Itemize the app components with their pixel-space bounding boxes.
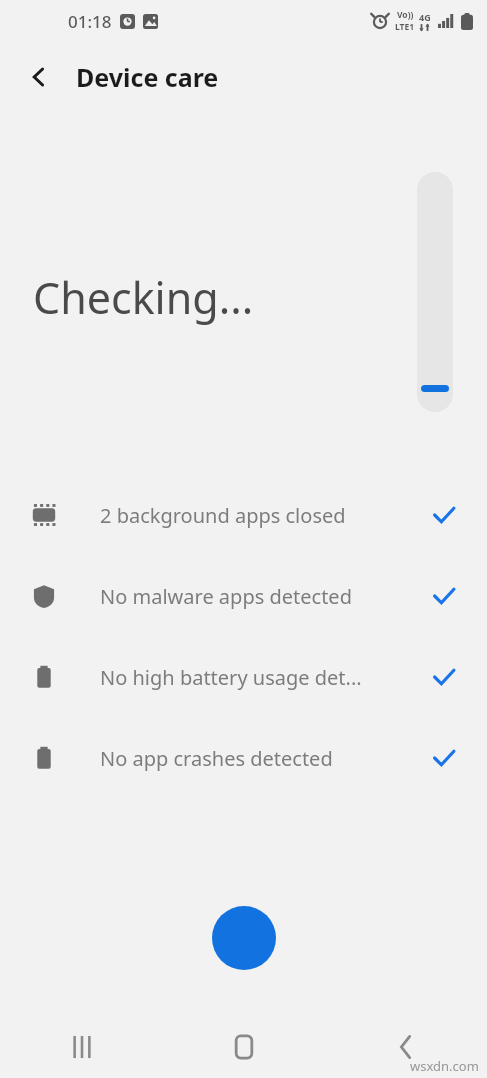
button[interactable]: Optimise now [212,906,276,970]
button[interactable]: No malware apps detected [0,568,487,624]
staticText: wsxdn.com [410,1057,479,1075]
button[interactable]: 2 background apps closed [0,487,487,543]
staticText: No app crashes detected [100,745,333,772]
staticText: No high battery usage det... [100,664,362,691]
button[interactable]: Home [163,1016,325,1078]
button[interactable]: No app crashes detected [0,730,487,786]
button[interactable]: No high battery usage det... [0,649,487,705]
staticText: 2 background apps closed [100,502,346,529]
staticText: Checking... [33,268,254,327]
staticText: LTE1 [395,21,415,33]
button[interactable]: Back [325,1016,487,1078]
staticText: 01:18 [68,10,112,33]
staticText: No malware apps detected [100,583,352,610]
staticText: Device care [76,60,219,94]
button[interactable]: Recent apps [0,1016,163,1078]
staticText: 4G [419,11,431,23]
staticText: Vo)) [397,9,414,21]
button[interactable]: Back [16,54,62,100]
